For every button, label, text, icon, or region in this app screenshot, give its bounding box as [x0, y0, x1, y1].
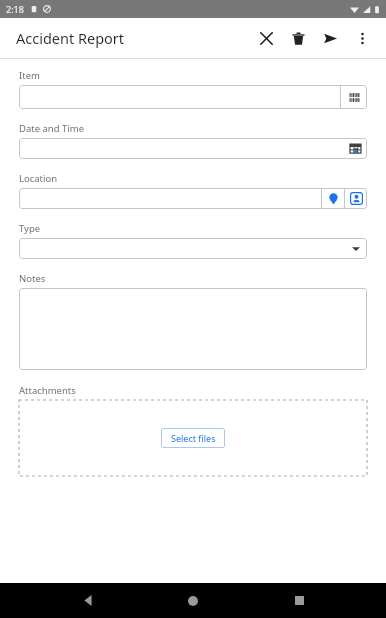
staticText: Location: [19, 172, 58, 185]
staticText: Date and Time: [19, 122, 85, 135]
button[interactable]: Send: [314, 22, 346, 54]
button[interactable]: Delete: [282, 22, 314, 54]
button[interactable]: Back: [70, 583, 106, 618]
button[interactable]: [19, 288, 367, 370]
button[interactable]: Map location: [19, 188, 367, 209]
button[interactable]: My location: [345, 188, 367, 209]
button[interactable]: Pick date and time: [343, 138, 367, 159]
button[interactable]: Close: [250, 22, 282, 54]
staticText: Type: [19, 222, 41, 235]
staticText: Accident Report: [16, 28, 125, 48]
button[interactable]: Home: [175, 583, 211, 618]
staticText: Notes: [19, 272, 46, 285]
button[interactable]: Scan barcode: [19, 85, 367, 109]
staticText: Select files: [171, 432, 216, 444]
button[interactable]: Map location: [322, 188, 344, 209]
button[interactable]: Scan barcode: [341, 85, 367, 109]
staticText: Attachments: [19, 384, 76, 397]
button[interactable]: Pick date and time: [19, 138, 367, 159]
staticText: 2:18: [6, 3, 24, 15]
button[interactable]: Select type: [345, 238, 367, 259]
staticText: Item: [19, 69, 40, 82]
button[interactable]: Select type: [19, 238, 367, 259]
button[interactable]: Recent apps: [281, 583, 317, 618]
button[interactable]: More options: [346, 22, 378, 54]
button[interactable]: Select files: [161, 428, 225, 448]
